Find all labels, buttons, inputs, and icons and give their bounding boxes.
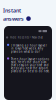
staticText: I'm taking a 3 hour layover (11, 44, 47, 47)
staticText: Hide Recents • New chat (10, 36, 43, 39)
staticText: plans to be best to do next. (11, 69, 50, 73)
staticText: that's easy on your time and (11, 63, 49, 67)
staticText: in Tokyo next week. Any (11, 47, 43, 50)
staticText: plans on what to do? (11, 50, 40, 53)
staticText: answers (3, 15, 24, 22)
staticText: Three-hour layover options (11, 57, 49, 61)
staticText: keeps you near the airport. (11, 66, 49, 70)
staticText: Instant (3, 7, 21, 14)
staticText: exist. Here's the short plan (11, 60, 47, 64)
